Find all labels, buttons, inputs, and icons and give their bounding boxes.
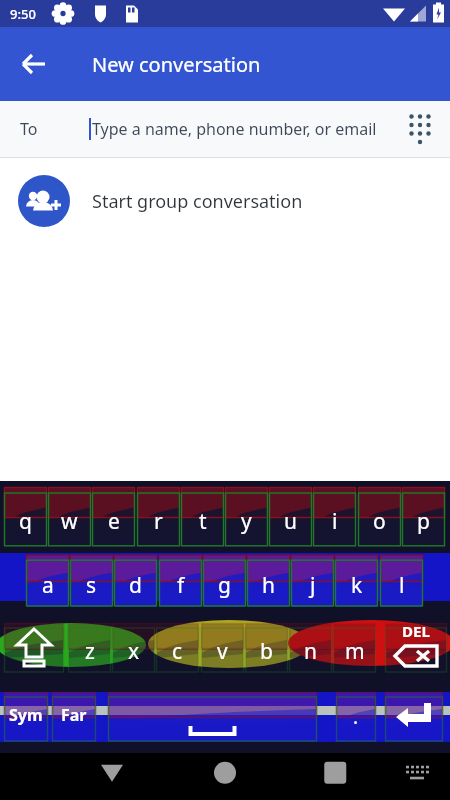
staticText: r: [154, 507, 163, 536]
staticText: d: [129, 571, 142, 600]
staticText: Sym: [9, 704, 43, 726]
staticText: f: [177, 571, 185, 600]
button[interactable]: Delete: [385, 623, 447, 673]
button[interactable]: x: [112, 623, 155, 673]
button[interactable]: g: [203, 555, 246, 607]
staticText: t: [199, 507, 207, 536]
button[interactable]: u: [269, 487, 312, 547]
staticText: m: [345, 637, 365, 666]
button[interactable]: o: [358, 487, 401, 547]
button[interactable]: Far: [52, 692, 96, 742]
button[interactable]: l: [380, 555, 423, 607]
staticText: h: [262, 571, 275, 600]
staticText: Far: [61, 704, 87, 726]
button[interactable]: v: [201, 623, 244, 673]
button[interactable]: a: [26, 555, 69, 607]
staticText: c: [172, 637, 183, 666]
staticText: v: [217, 637, 228, 666]
staticText: 9:50: [10, 5, 36, 23]
staticText: DEL: [402, 621, 430, 641]
button[interactable]: Enter: [385, 692, 443, 742]
staticText: New conversation: [92, 51, 261, 78]
button[interactable]: z: [68, 623, 111, 673]
button[interactable]: .: [336, 692, 376, 742]
staticText: y: [241, 507, 252, 536]
staticText: Type a name, phone number, or email: [92, 118, 377, 140]
button[interactable]: y: [225, 487, 268, 547]
button[interactable]: m: [333, 623, 376, 673]
staticText: .: [353, 704, 359, 730]
staticText: To: [20, 118, 38, 140]
button[interactable]: s: [70, 555, 113, 607]
staticText: k: [351, 571, 363, 600]
button[interactable]: k: [335, 555, 378, 607]
button[interactable]: n: [289, 623, 332, 673]
button[interactable]: Start group conversation: [0, 158, 450, 244]
button[interactable]: Shift: [4, 623, 64, 673]
staticText: o: [373, 507, 386, 536]
button[interactable]: i: [313, 487, 356, 547]
button[interactable]: Sym: [4, 692, 48, 742]
staticText: p: [417, 507, 430, 536]
staticText: l: [399, 571, 405, 600]
button[interactable]: r: [137, 487, 180, 547]
staticText: e: [108, 507, 120, 536]
staticText: z: [85, 637, 95, 666]
button[interactable]: f: [159, 555, 202, 607]
staticText: Start group conversation: [92, 189, 303, 214]
staticText: a: [42, 571, 54, 600]
staticText: x: [128, 637, 140, 666]
button[interactable]: b: [245, 623, 288, 673]
button[interactable]: t: [181, 487, 224, 547]
staticText: i: [332, 507, 338, 536]
staticText: n: [304, 637, 317, 666]
button[interactable]: w: [48, 487, 91, 547]
button[interactable]: j: [291, 555, 334, 607]
button[interactable]: Space: [108, 692, 317, 742]
staticText: u: [284, 507, 297, 536]
button[interactable]: Back: [10, 40, 58, 88]
button[interactable]: q: [4, 487, 47, 547]
staticText: s: [86, 571, 97, 600]
staticText: b: [260, 637, 273, 666]
button[interactable]: h: [247, 555, 290, 607]
button[interactable]: p: [402, 487, 445, 547]
staticText: q: [19, 507, 32, 536]
staticText: g: [218, 571, 231, 600]
button[interactable]: d: [114, 555, 157, 607]
staticText: w: [61, 507, 78, 536]
button[interactable]: c: [156, 623, 199, 673]
button[interactable]: Dialpad: [398, 107, 442, 151]
button[interactable]: e: [92, 487, 135, 547]
staticText: j: [310, 571, 316, 600]
